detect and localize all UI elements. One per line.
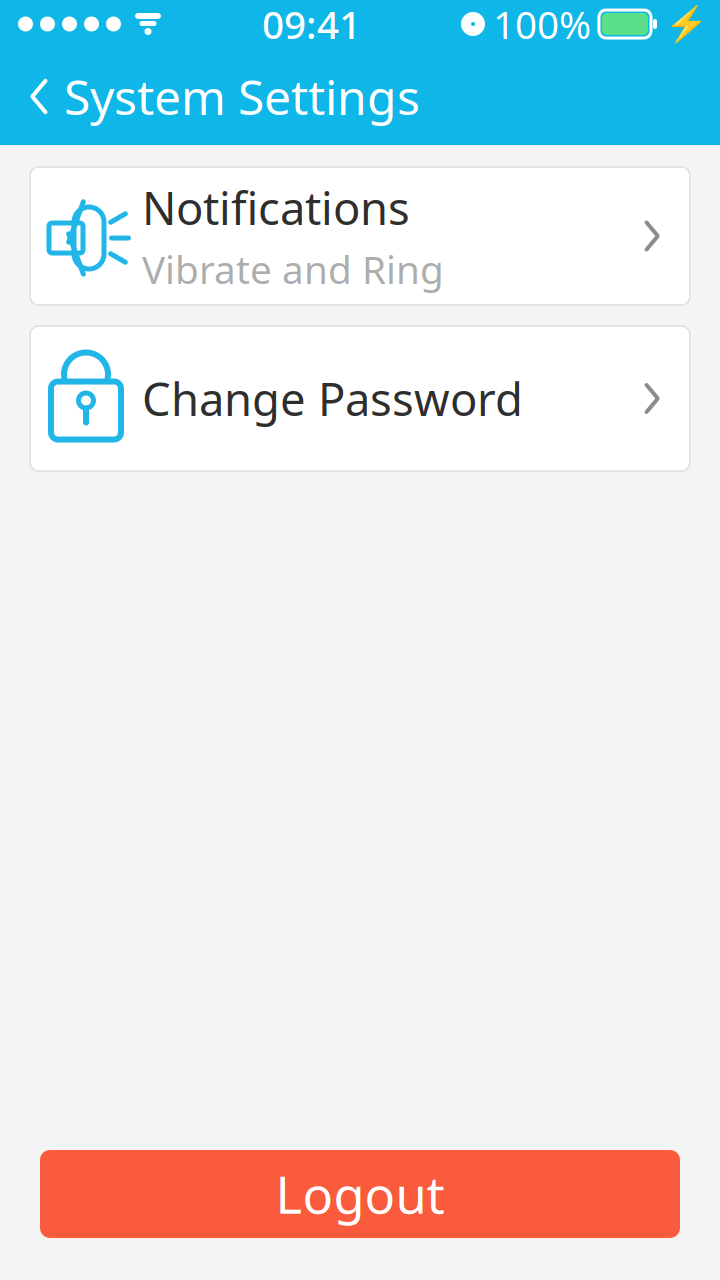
button[interactable]: Back to System Settings (0, 48, 436, 145)
staticText: Notifications (142, 177, 410, 237)
staticText: System Settings (64, 65, 420, 128)
staticText: Change Password (142, 368, 523, 429)
staticText: Logout (275, 1160, 444, 1228)
staticText: 09:41 (262, 0, 361, 50)
button[interactable]: Change Password (30, 326, 690, 471)
button[interactable]: Notifications (30, 167, 690, 305)
button[interactable]: Logout (40, 1150, 680, 1238)
staticText: ⚡ (665, 4, 708, 44)
staticText: 100% (493, 0, 591, 50)
staticText: Vibrate and Ring (142, 243, 444, 295)
